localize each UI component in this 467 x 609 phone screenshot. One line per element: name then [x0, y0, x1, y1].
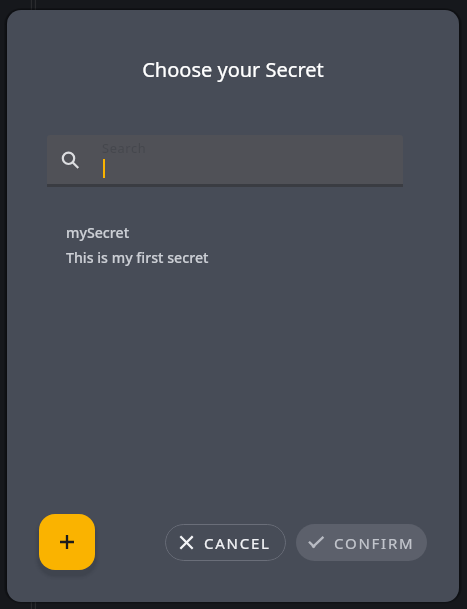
button[interactable]: Search: [47, 135, 403, 187]
staticText: This is my first secret: [66, 248, 209, 267]
button[interactable]: CANCEL: [165, 524, 286, 561]
staticText: Choose your Secret: [7, 56, 459, 83]
staticText: CONFIRM: [334, 533, 415, 553]
staticText: Search: [102, 139, 147, 156]
staticText: CANCEL: [204, 533, 271, 553]
button[interactable]: Add secret: [39, 514, 95, 570]
staticText: mySecret: [66, 223, 130, 242]
button[interactable]: mySecret: [7, 223, 459, 267]
button[interactable]: CONFIRM: [296, 524, 427, 561]
